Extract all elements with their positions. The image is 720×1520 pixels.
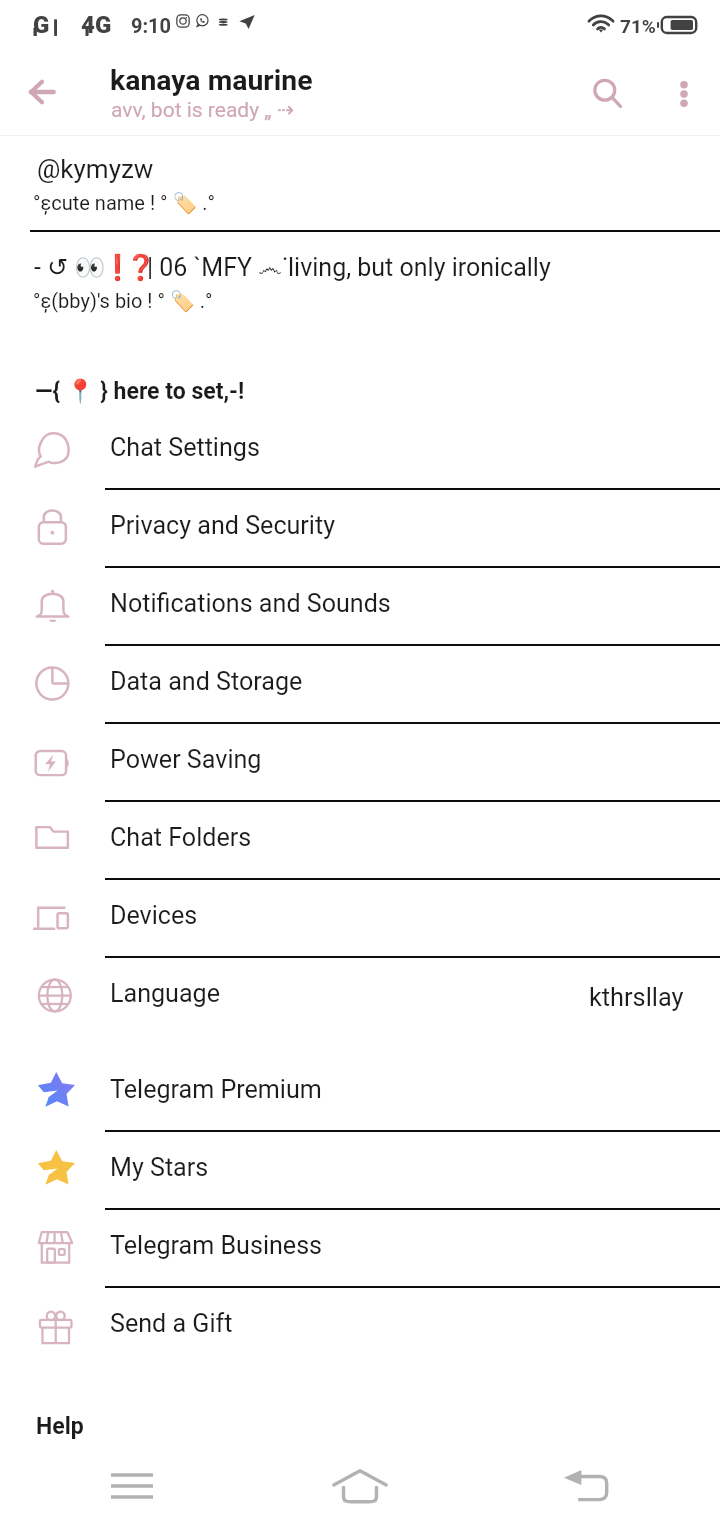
staticText: 4G	[81, 11, 112, 39]
staticText: ❗❓	[102, 253, 149, 282]
button[interactable]: Chat Folders	[0, 800, 720, 878]
staticText: 71%	[620, 15, 656, 37]
button[interactable]: Privacy and Security	[0, 488, 720, 566]
button[interactable]: Send a Gift	[0, 1286, 720, 1364]
staticText: Language	[110, 979, 220, 1008]
button[interactable]: Telegram Premium	[0, 1052, 720, 1130]
staticText: avv, bot is ready „ ⇢	[111, 98, 295, 123]
staticText: Notifications and Sounds	[110, 589, 391, 618]
staticText: Data and Storage	[110, 667, 303, 696]
staticText: Telegram Premium	[110, 1075, 322, 1104]
button[interactable]: Chat Settings	[0, 410, 720, 488]
button[interactable]: Devices	[0, 878, 720, 956]
staticText: Help	[36, 1413, 84, 1440]
staticText: Privacy and Security	[110, 511, 336, 540]
staticText: Devices	[110, 901, 198, 930]
button[interactable]: Power Saving	[0, 722, 720, 800]
staticText: - ↺ 👀	[34, 253, 106, 282]
staticText: °ε̦(bby)'s bio ! ° 🏷 .°	[33, 289, 213, 312]
button[interactable]: Telegram Business	[0, 1208, 720, 1286]
staticText: —{ 📍 } here to set,-!	[35, 378, 245, 405]
staticText: Chat Folders	[110, 823, 252, 852]
button[interactable]: Recents	[88, 1442, 176, 1520]
button[interactable]: More options	[652, 62, 716, 126]
staticText: My Stars	[110, 1153, 209, 1182]
button[interactable]: Back	[542, 1442, 630, 1520]
staticText: Send a Gift	[110, 1309, 233, 1338]
button[interactable]: Notifications and Sounds	[0, 566, 720, 644]
staticText: kanaya maurine	[110, 64, 313, 97]
staticText: Power Saving	[110, 745, 262, 774]
button[interactable]: @kymyzw	[0, 140, 720, 226]
staticText: @kymyzw	[37, 154, 154, 184]
staticText: | 06 `MFY ෴˙living, but only ironically	[147, 253, 551, 282]
button[interactable]: My Stars	[0, 1130, 720, 1208]
button[interactable]: - ↺ 👀	[0, 238, 720, 324]
button[interactable]: Back	[10, 60, 74, 124]
staticText: Telegram Business	[110, 1231, 323, 1260]
button[interactable]: Language	[0, 956, 720, 1034]
button[interactable]: Search	[576, 62, 640, 126]
button[interactable]: Data and Storage	[0, 644, 720, 722]
staticText: kthrsllay	[589, 983, 684, 1013]
button[interactable]: Help	[0, 1402, 720, 1450]
button[interactable]: Home	[316, 1442, 404, 1520]
staticText: °ε̦cute name ! ° 🏷 .°	[33, 191, 216, 214]
staticText: Chat Settings	[110, 433, 260, 462]
staticText: G	[33, 11, 50, 39]
staticText: 9:10	[131, 14, 172, 37]
